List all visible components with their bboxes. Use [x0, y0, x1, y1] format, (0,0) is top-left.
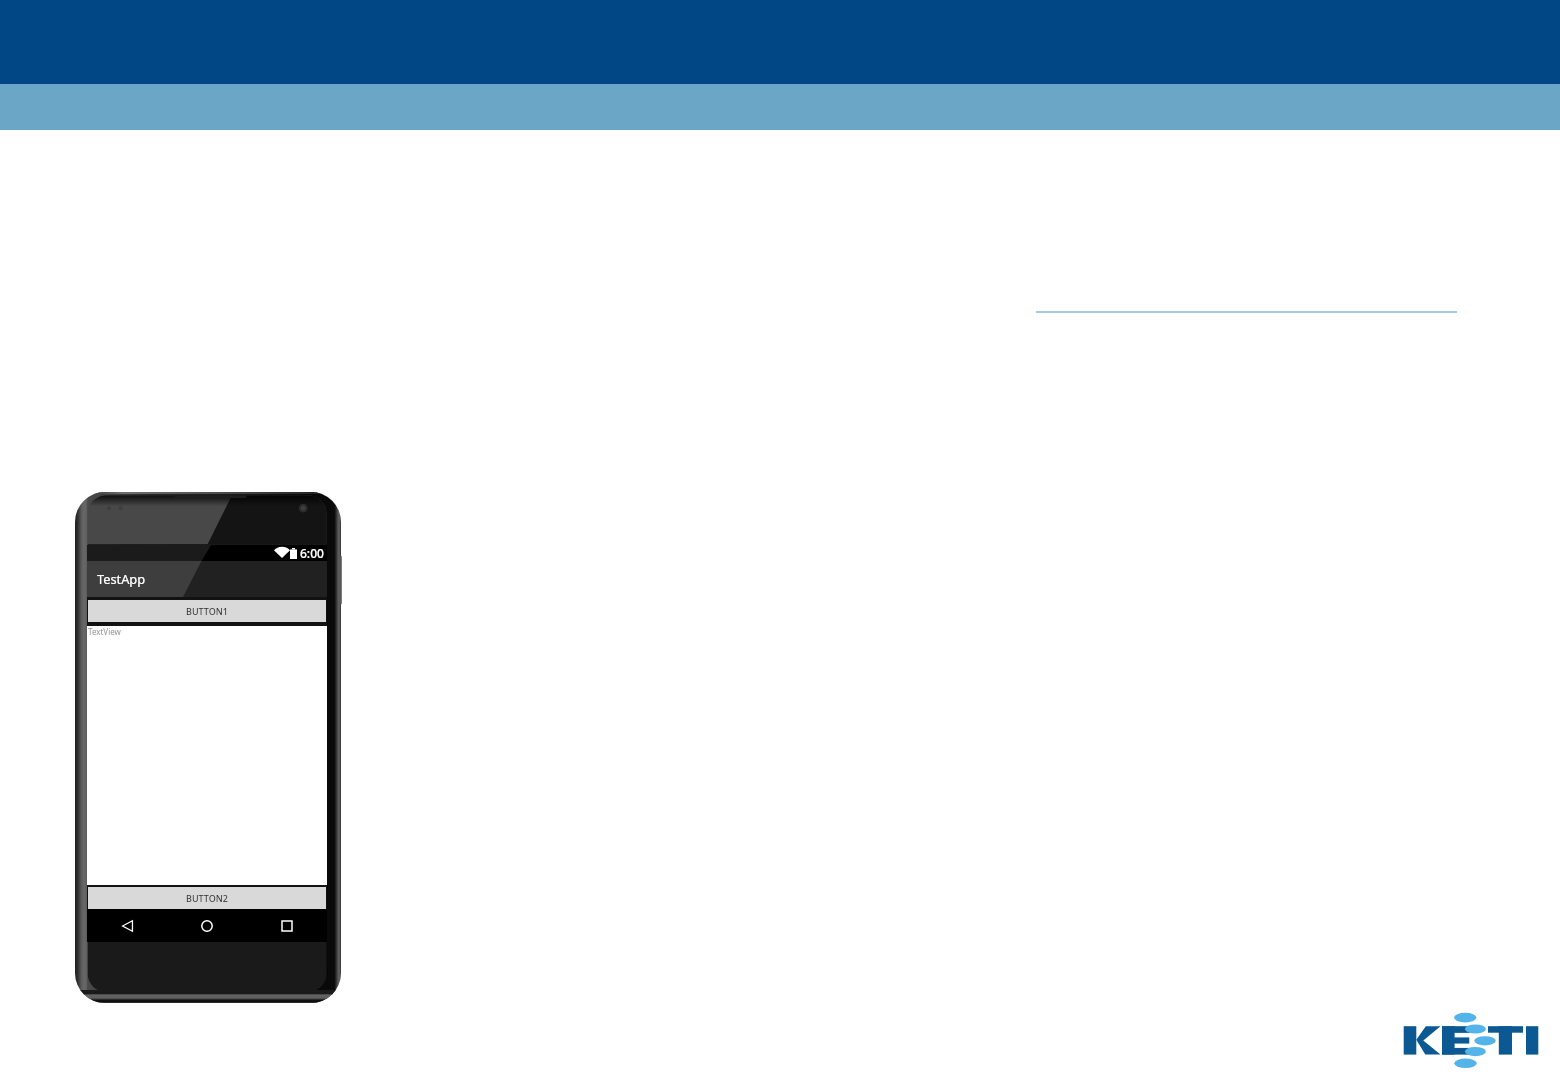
staticText: 6:00: [300, 545, 324, 561]
button[interactable]: Home: [192, 911, 222, 941]
staticText: BUTTON1: [186, 605, 228, 617]
staticText: TestApp: [97, 570, 146, 587]
staticText: TextView: [88, 626, 121, 637]
button[interactable]: BUTTON1: [88, 600, 326, 622]
button[interactable]: Recents: [272, 911, 302, 941]
button[interactable]: Back: [112, 911, 142, 941]
staticText: BUTTON2: [186, 892, 228, 904]
button[interactable]: BUTTON2: [88, 887, 326, 909]
button[interactable]: TestApp: [87, 561, 327, 597]
